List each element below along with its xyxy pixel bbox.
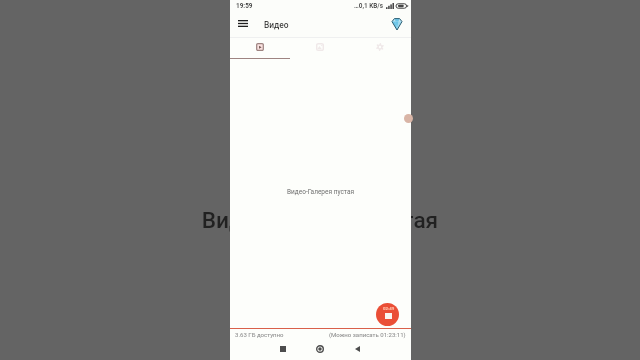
staticText: 3.63 ГБ доступно — [235, 331, 284, 338]
staticText: Видео-Галерея пустая — [0, 207, 640, 233]
button[interactable]: Settings tab — [351, 37, 411, 59]
staticText: Видео — [264, 20, 289, 30]
staticText: 19:59 — [236, 2, 253, 10]
button[interactable]: Recent apps — [274, 340, 292, 358]
button[interactable]: Video tab — [230, 37, 291, 59]
staticText: …0,1 KB/s — [354, 2, 384, 10]
button[interactable]: Gallery tab — [291, 37, 351, 59]
button[interactable]: Stop recording — [376, 303, 399, 326]
staticText: (Можно записать 01:23:11) — [329, 331, 406, 338]
staticText: Видео-Галерея пустая — [230, 188, 411, 196]
button[interactable]: Home — [311, 340, 329, 358]
button[interactable]: Back — [348, 340, 366, 358]
staticText: 02:49 — [383, 306, 395, 311]
button[interactable]: Premium — [388, 15, 406, 33]
button[interactable]: Open navigation menu — [234, 14, 252, 32]
